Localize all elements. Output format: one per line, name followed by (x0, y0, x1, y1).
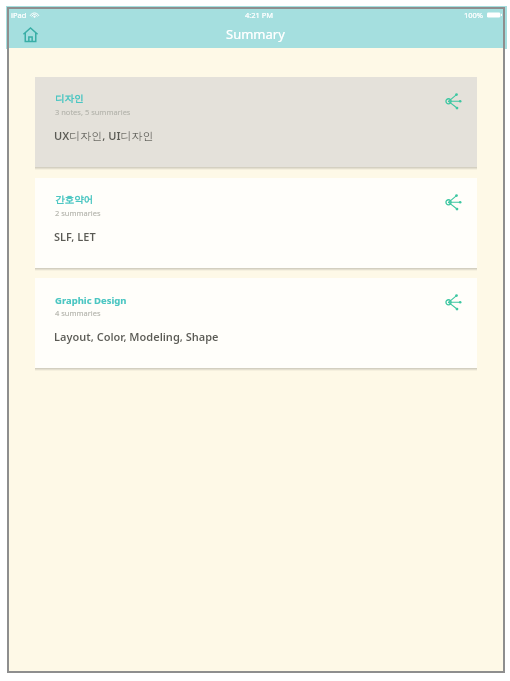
staticText: Summary (226, 25, 285, 43)
staticText: 디자인 (55, 93, 84, 105)
staticText: 3 notes, 5 summaries (55, 107, 131, 117)
staticText: 4:21 PM (245, 10, 274, 20)
staticText: 4 summaries (55, 308, 101, 318)
staticText: UX디자인, UI디자인 (54, 128, 154, 143)
staticText: 100% (464, 10, 484, 20)
button[interactable]: 디자인 (35, 77, 477, 167)
staticText: iPad (11, 10, 27, 20)
staticText: 간호약어 (55, 194, 93, 206)
staticText: 2 summaries (55, 208, 101, 218)
button[interactable]: Graphic Design (35, 278, 477, 368)
button[interactable]: Share (442, 90, 464, 112)
staticText: SLF, LET (54, 229, 96, 244)
staticText: Layout, Color, Modeling, Shape (54, 329, 219, 344)
staticText: Graphic Design (55, 294, 127, 307)
button[interactable]: 간호약어 (35, 178, 477, 268)
button[interactable]: Share (442, 191, 464, 213)
button[interactable]: Share (442, 291, 464, 313)
button[interactable]: Home (19, 23, 41, 45)
